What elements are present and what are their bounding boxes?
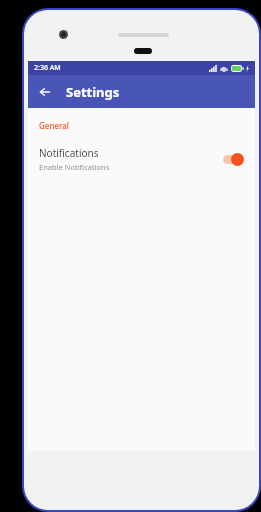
button[interactable]: Notifications xyxy=(28,142,255,176)
staticText: 2:36 AM xyxy=(34,63,61,73)
staticText: Notifications xyxy=(39,146,99,160)
button[interactable]: Enable Notifications toggle xyxy=(221,151,245,167)
staticText: General xyxy=(39,120,69,131)
staticText: Enable Notifications xyxy=(39,162,110,172)
staticText: Settings xyxy=(66,83,120,101)
button[interactable]: Back xyxy=(34,81,56,103)
